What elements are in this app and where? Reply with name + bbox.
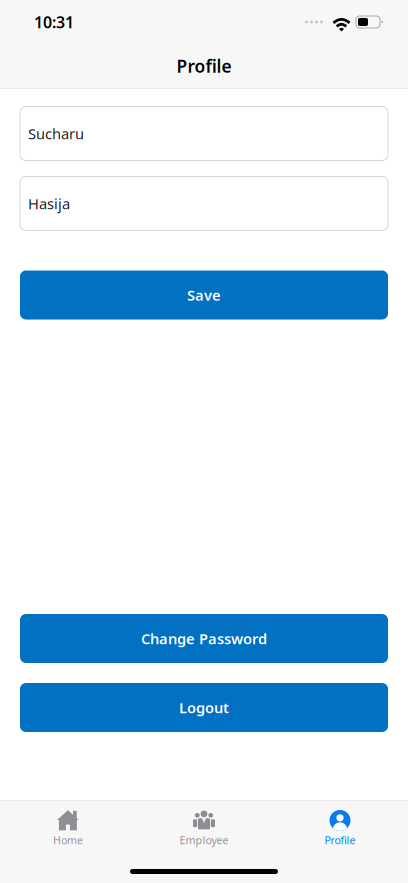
staticText: Change Password (141, 629, 267, 648)
button[interactable]: Change Password (20, 614, 388, 663)
staticText: Profile (176, 54, 231, 77)
button[interactable]: Save (20, 270, 388, 319)
staticText: Save (187, 285, 221, 305)
staticText: Logout (179, 698, 229, 717)
staticText: Sucharu (28, 124, 84, 143)
staticText: Employee (179, 833, 228, 847)
button[interactable]: Employee (136, 805, 272, 851)
staticText: Profile (324, 833, 355, 847)
button[interactable]: Logout (20, 683, 388, 732)
staticText: 10:31 (34, 11, 74, 33)
staticText: Home (53, 833, 83, 847)
button[interactable]: Profile (272, 805, 408, 851)
staticText: Hasija (28, 194, 70, 213)
button[interactable]: Home (0, 805, 136, 851)
